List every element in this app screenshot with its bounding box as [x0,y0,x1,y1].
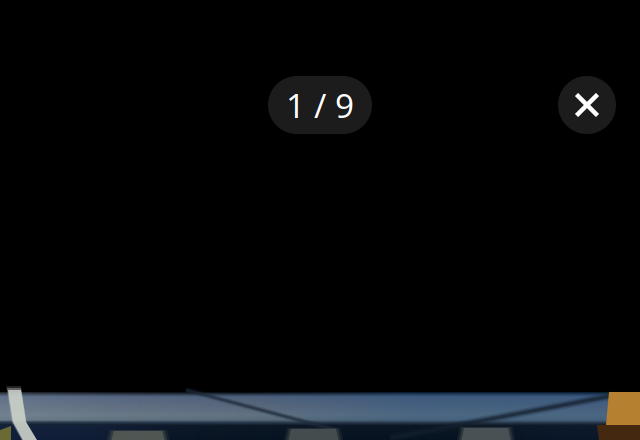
button[interactable]: Close [558,76,616,134]
button[interactable]: 1 / 9 [268,76,372,134]
staticText: 1 / 9 [286,83,354,127]
